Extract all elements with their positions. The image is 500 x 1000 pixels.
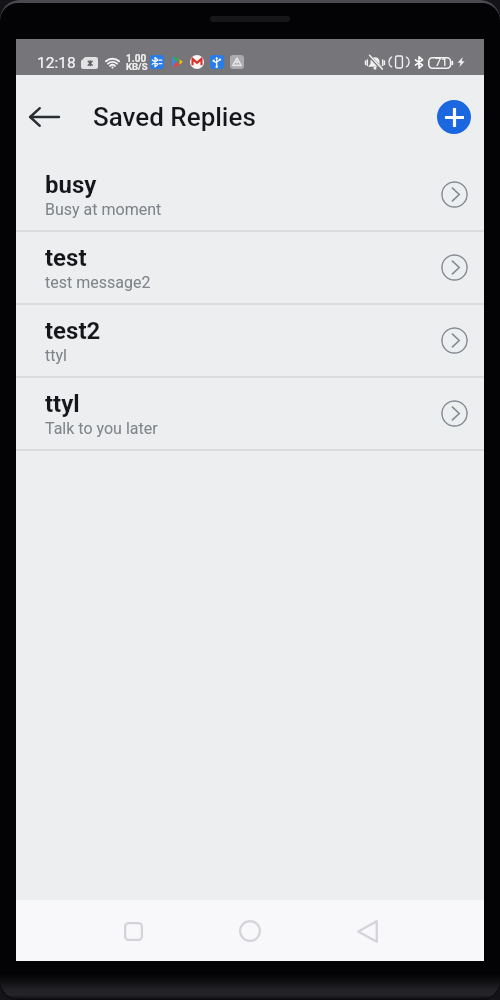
staticText: 1.00 bbox=[126, 53, 147, 65]
button[interactable]: Home bbox=[228, 909, 272, 953]
staticText: KB/S bbox=[126, 61, 148, 72]
button[interactable]: Open bbox=[441, 181, 468, 208]
button[interactable]: Add saved reply bbox=[437, 100, 471, 134]
staticText: ttyl bbox=[45, 346, 67, 365]
staticText: test2 bbox=[45, 317, 101, 345]
staticText: Talk to you later bbox=[45, 419, 158, 438]
staticText: Busy at moment bbox=[45, 200, 162, 219]
button[interactable]: busy bbox=[16, 159, 484, 230]
button[interactable]: Recent apps bbox=[111, 909, 155, 953]
button[interactable]: Back bbox=[345, 909, 389, 953]
button[interactable]: Open bbox=[441, 327, 468, 354]
staticText: ttyl bbox=[45, 390, 80, 418]
button[interactable]: test2 bbox=[16, 305, 484, 376]
button[interactable]: ttyl bbox=[16, 378, 484, 449]
staticText: 12:18 bbox=[37, 54, 76, 72]
button[interactable]: Back bbox=[22, 95, 66, 139]
staticText: Saved Replies bbox=[93, 102, 256, 132]
button[interactable]: test bbox=[16, 232, 484, 303]
staticText: busy bbox=[45, 171, 97, 199]
button[interactable]: Open bbox=[441, 254, 468, 281]
staticText: test message2 bbox=[45, 273, 151, 292]
staticText: test bbox=[45, 244, 87, 272]
button[interactable]: Open bbox=[441, 400, 468, 427]
staticText: 71 bbox=[435, 56, 448, 68]
